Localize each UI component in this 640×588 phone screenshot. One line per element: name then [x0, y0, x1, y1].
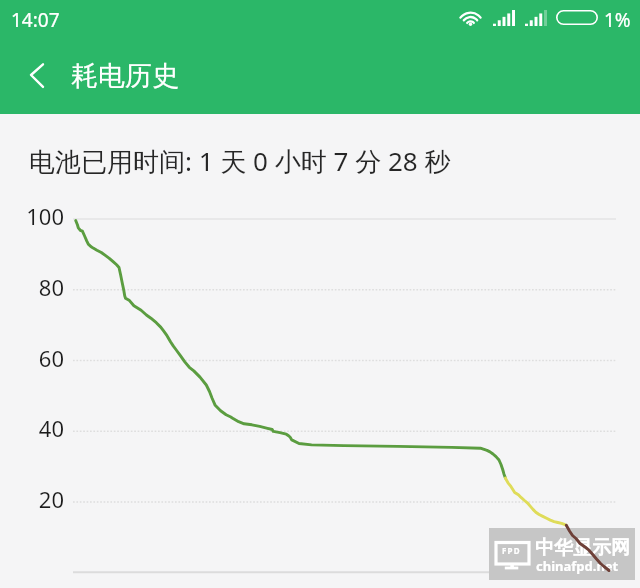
staticText: 耗电历史 [71, 59, 179, 93]
staticText: 100 [12, 201, 64, 231]
staticText: 中华显示网 [535, 536, 630, 560]
staticText: 80 [12, 272, 64, 302]
staticText: 60 [12, 343, 64, 373]
staticText: 40 [12, 413, 64, 443]
staticText: 14:07 [11, 7, 60, 33]
staticText: chinafpd.net [536, 557, 619, 575]
staticText: 电池已用时间: 1 天 0 小时 7 分 28 秒 [29, 143, 451, 179]
staticText: FPD [502, 545, 521, 556]
staticText: 1% [604, 7, 631, 33]
staticText: 20 [12, 484, 64, 514]
button[interactable]: Back [8, 52, 56, 100]
